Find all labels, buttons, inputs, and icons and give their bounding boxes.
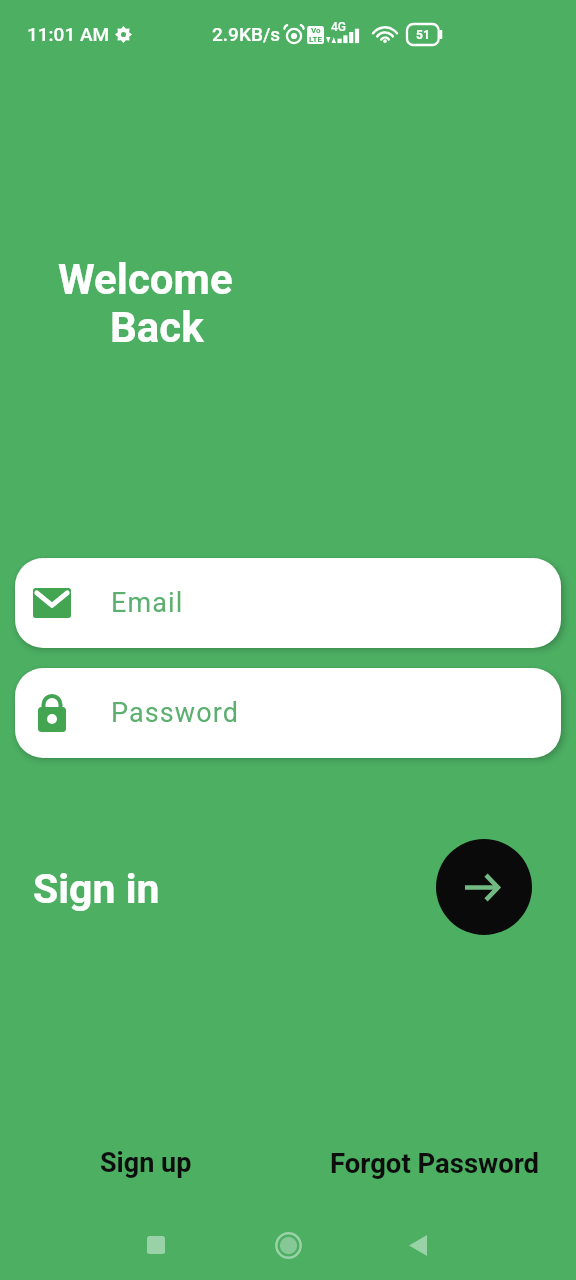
button[interactable]: Email	[15, 558, 561, 648]
button[interactable]: Sign up	[100, 1147, 192, 1179]
button[interactable]: Forgot Password	[330, 1147, 540, 1179]
staticText: Email	[111, 587, 184, 619]
staticText: 2.9KB/s	[212, 23, 281, 45]
staticText: Vo	[311, 26, 321, 35]
staticText: LTE	[309, 35, 322, 44]
button[interactable]: Recents	[128, 1217, 184, 1273]
button[interactable]: Back	[390, 1217, 446, 1273]
staticText: 4G	[331, 20, 346, 34]
button[interactable]: Sign in	[436, 839, 532, 935]
staticText: 11:01 AM	[27, 23, 110, 45]
staticText: Welcome	[58, 255, 233, 304]
button[interactable]: Sign in	[33, 865, 160, 913]
button[interactable]: Password	[15, 668, 561, 758]
staticText: Back	[110, 303, 204, 352]
staticText: Sign up	[100, 1147, 192, 1179]
staticText: Sign in	[33, 865, 160, 913]
button[interactable]: Home	[260, 1217, 316, 1273]
staticText: Password	[111, 697, 240, 729]
staticText: Forgot Password	[330, 1147, 540, 1179]
staticText: 51	[416, 28, 430, 42]
